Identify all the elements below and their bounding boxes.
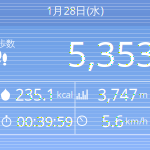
staticText: 00:39:59 <box>16 111 72 131</box>
staticText: m <box>139 88 148 101</box>
button[interactable]: Active steps <box>75 82 150 107</box>
staticText: 5,353 <box>67 30 150 76</box>
button[interactable]: Speed <box>75 108 150 134</box>
staticText: 3,747 <box>97 84 137 105</box>
staticText: 5.6 <box>101 110 123 132</box>
staticText: kcal <box>56 88 72 101</box>
staticText: 歩数 <box>0 38 15 49</box>
button[interactable]: Duration <box>0 108 74 134</box>
staticText: 235.1 <box>15 84 55 105</box>
staticText: 1月28日(水) <box>46 3 103 18</box>
button[interactable]: Calories <box>0 82 74 107</box>
staticText: km/h <box>125 115 148 127</box>
